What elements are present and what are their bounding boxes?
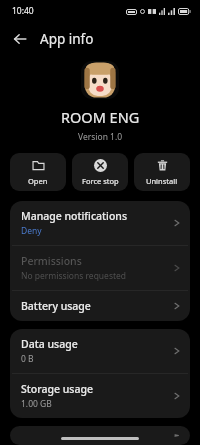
staticText: Data usage (21, 337, 78, 351)
staticText: ROOM ENG (61, 107, 140, 127)
button[interactable]: Storage usage (10, 374, 190, 418)
button[interactable]: Open by default (10, 426, 190, 445)
button[interactable]: Manage notifications (10, 201, 190, 245)
staticText: Uninstall (146, 176, 178, 186)
other: Force stop app (94, 159, 107, 172)
button[interactable]: Permissions (10, 246, 190, 290)
staticText: Permissions (21, 254, 82, 268)
staticText: Open (28, 176, 48, 186)
button[interactable]: Back (6, 25, 34, 53)
other: Uninstall app (156, 159, 169, 172)
staticText: Version 1.0 (78, 131, 123, 143)
button[interactable]: Battery usage (10, 291, 190, 321)
staticText: Manage notifications (21, 209, 128, 223)
staticText: App info (40, 30, 94, 48)
button[interactable]: Data usage (10, 329, 190, 373)
staticText: Deny (21, 225, 42, 237)
button[interactable]: Force stop app (72, 153, 128, 191)
staticText: Force stop (82, 176, 119, 186)
staticText: 0 B (21, 353, 34, 365)
staticText: 1.00 GB (21, 398, 52, 410)
button[interactable]: Uninstall app (134, 153, 190, 191)
staticText: 10:40 (12, 5, 34, 17)
staticText: Battery usage (21, 299, 91, 313)
button[interactable]: Open app (10, 153, 66, 191)
staticText: Storage usage (21, 382, 93, 396)
staticText: No permissions requested (21, 270, 127, 282)
other: Open app (32, 159, 45, 172)
